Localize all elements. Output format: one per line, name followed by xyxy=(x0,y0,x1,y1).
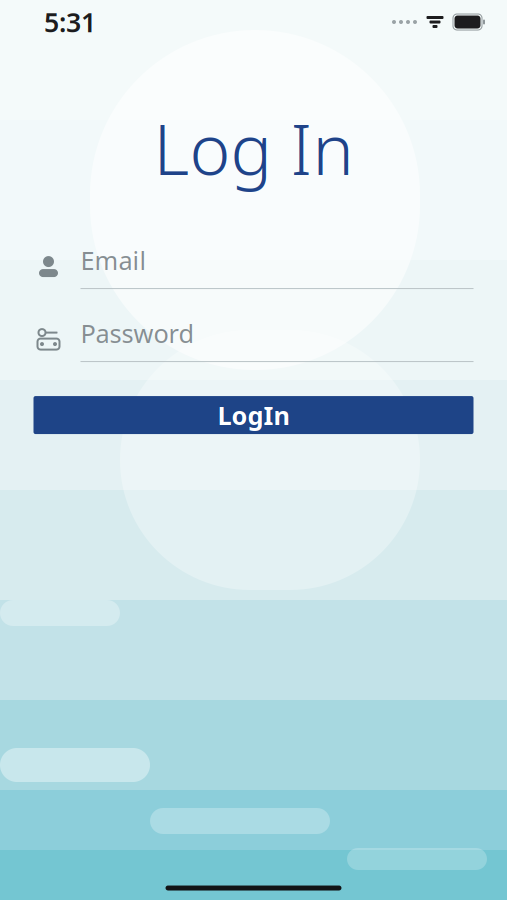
staticText: LogIn xyxy=(217,398,289,432)
staticText: 5:31 xyxy=(44,4,96,40)
staticText: Email xyxy=(80,243,146,277)
staticText: Log In xyxy=(153,102,353,194)
staticText: Password xyxy=(80,316,194,350)
button[interactable]: LogIn xyxy=(33,396,473,434)
